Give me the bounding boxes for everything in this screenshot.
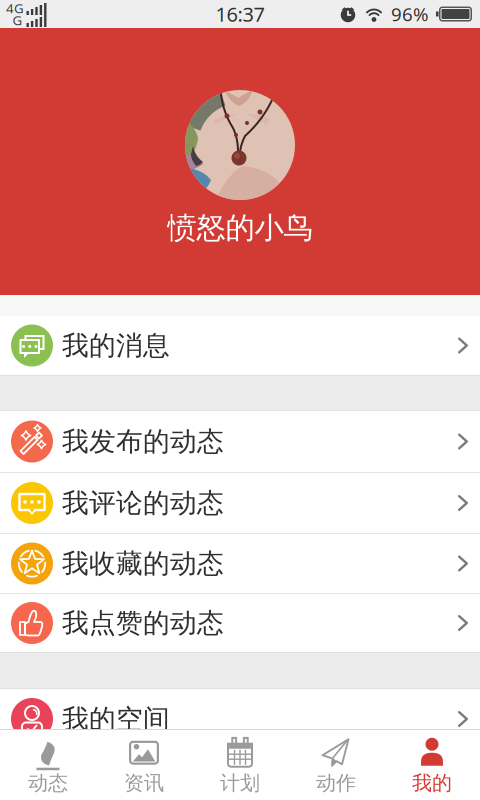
staticText: 愤怒的小鸟 — [167, 210, 312, 246]
staticText: 动态 — [28, 771, 68, 795]
staticText: 我的空间 — [62, 703, 170, 735]
button[interactable]: 我评论的动态 — [0, 473, 480, 533]
button[interactable]: 动作 — [288, 730, 384, 800]
button[interactable]: 计划 — [192, 730, 288, 800]
button[interactable]: 我发布的动态 — [0, 411, 480, 472]
staticText: 资讯 — [124, 771, 164, 795]
button[interactable]: 头像 — [185, 90, 295, 200]
staticText: 16:37 — [215, 1, 264, 27]
button[interactable]: 我收藏的动态 — [0, 534, 480, 593]
button[interactable]: 资讯 — [96, 730, 192, 800]
button[interactable]: 动态 — [0, 730, 96, 800]
staticText: 我发布的动态 — [62, 425, 224, 458]
staticText: G — [12, 11, 22, 29]
staticText: 计划 — [220, 771, 260, 795]
staticText: 动作 — [316, 771, 356, 795]
staticText: 我点赞的动态 — [62, 607, 224, 639]
staticText: 我评论的动态 — [62, 487, 224, 519]
button[interactable]: 我的空间 — [0, 689, 480, 749]
staticText: 我收藏的动态 — [62, 547, 224, 580]
button[interactable]: 我的 — [384, 730, 480, 800]
button[interactable]: 我点赞的动态 — [0, 594, 480, 652]
staticText: 我的 — [412, 771, 452, 795]
staticText: 4G — [6, 0, 24, 17]
staticText: 我的消息 — [62, 329, 170, 362]
staticText: 96% — [391, 2, 429, 26]
button[interactable]: 我的消息 — [0, 316, 480, 375]
